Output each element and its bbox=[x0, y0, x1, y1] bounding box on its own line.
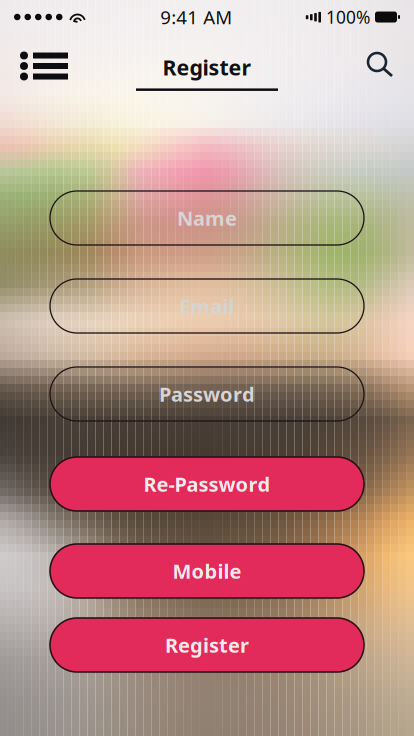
staticText: 100% bbox=[326, 5, 370, 28]
staticText: Re-Password bbox=[143, 471, 270, 497]
button[interactable]: Mobile bbox=[50, 544, 364, 598]
staticText: Register bbox=[162, 53, 251, 81]
button[interactable]: Re-Password bbox=[50, 457, 364, 511]
staticText: Name bbox=[177, 205, 237, 231]
button[interactable]: Register bbox=[50, 618, 364, 672]
staticText: 9:41 AM bbox=[160, 5, 232, 29]
button[interactable]: Name bbox=[50, 191, 364, 245]
button[interactable]: Email bbox=[50, 279, 364, 333]
button[interactable]: Menu bbox=[20, 51, 68, 78]
staticText: Mobile bbox=[172, 558, 241, 584]
button[interactable]: Search bbox=[366, 51, 394, 79]
button[interactable]: Password bbox=[50, 367, 364, 421]
staticText: Register bbox=[165, 632, 249, 658]
staticText: Password bbox=[159, 381, 255, 407]
staticText: Email bbox=[179, 293, 234, 319]
